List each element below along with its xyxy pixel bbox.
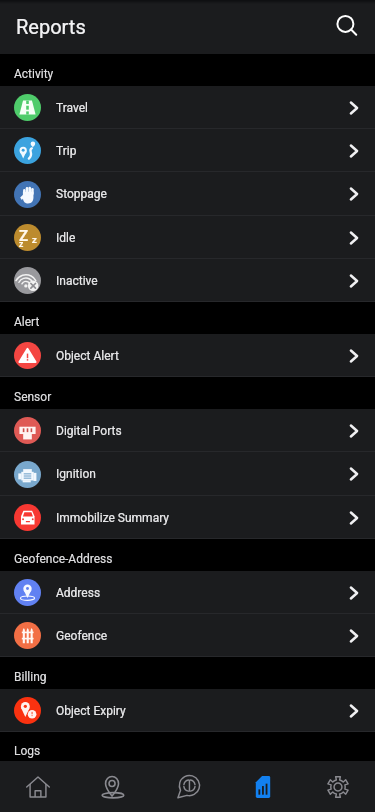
staticText: Reports <box>16 15 86 38</box>
staticText: Logs <box>14 744 41 758</box>
button[interactable]: Travel <box>0 86 375 129</box>
staticText: z <box>32 234 37 245</box>
staticText: Ignition <box>56 467 96 481</box>
button[interactable]: Object Expiry <box>0 689 375 732</box>
button[interactable]: Places <box>75 761 150 812</box>
button[interactable]: Address <box>0 571 375 614</box>
button[interactable]: Home <box>0 761 75 812</box>
button[interactable]: Immobilize Summary <box>0 496 375 539</box>
staticText: Object Alert <box>56 349 119 363</box>
button[interactable]: Ignition <box>0 452 375 496</box>
button[interactable]: Trip <box>0 129 375 172</box>
button[interactable]: Settings <box>300 761 375 812</box>
staticText: z <box>19 239 24 249</box>
staticText: Inactive <box>56 274 98 288</box>
staticText: Object Expiry <box>56 704 126 718</box>
staticText: Geofence-Address <box>14 552 113 566</box>
staticText: Digital Ports <box>56 424 122 438</box>
staticText: Stoppage <box>56 187 107 201</box>
staticText: Z <box>19 227 29 245</box>
button[interactable]: Digital Ports <box>0 409 375 452</box>
button[interactable]: Object Alert <box>0 334 375 377</box>
staticText: Geofence <box>56 629 108 643</box>
staticText: Travel <box>56 101 89 115</box>
button[interactable]: Inactive <box>0 259 375 302</box>
staticText: Address <box>56 586 101 600</box>
button[interactable]: Reports <box>225 761 300 812</box>
staticText: Immobilize Summary <box>56 511 170 525</box>
staticText: Billing <box>14 670 47 684</box>
staticText: Activity <box>14 67 54 81</box>
staticText: Trip <box>56 144 77 158</box>
staticText: Alert <box>14 315 40 329</box>
button[interactable]: Chat <box>150 761 225 812</box>
button[interactable]: Z <box>0 216 375 259</box>
button[interactable]: Stoppage <box>0 172 375 216</box>
button[interactable]: Search <box>328 7 368 47</box>
staticText: Sensor <box>14 390 52 404</box>
staticText: Idle <box>56 231 76 245</box>
button[interactable]: Geofence <box>0 614 375 657</box>
